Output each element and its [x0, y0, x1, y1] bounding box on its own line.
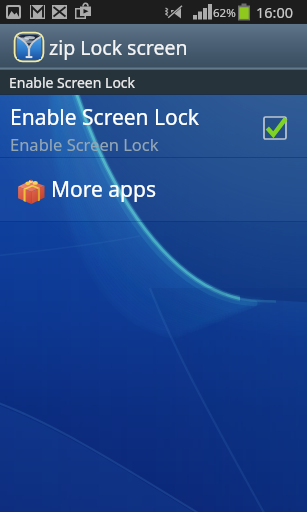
button[interactable]: More apps [0, 158, 307, 221]
button[interactable]: Enable Screen Lock checkbox [263, 116, 287, 140]
button[interactable]: Enable Screen Lock [0, 95, 307, 157]
staticText: Enable Screen Lock [9, 73, 136, 92]
staticText: zip Lock screen [49, 34, 188, 61]
staticText: Enable Screen Lock [10, 133, 159, 155]
staticText: 62% [213, 5, 236, 21]
staticText: Enable Screen Lock [10, 103, 200, 132]
staticText: 16:00 [256, 2, 294, 22]
staticText: More apps [51, 175, 156, 204]
